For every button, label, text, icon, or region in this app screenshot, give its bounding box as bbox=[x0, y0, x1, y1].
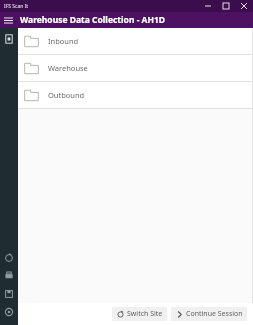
button[interactable]: Warehouse bbox=[18, 55, 253, 81]
staticText: IFS Scan It bbox=[4, 3, 29, 10]
button[interactable]: Refresh bbox=[0, 249, 18, 267]
button[interactable]: Maximize bbox=[217, 0, 235, 12]
button[interactable]: Continue Session bbox=[171, 307, 247, 321]
staticText: Continue Session bbox=[186, 309, 243, 319]
button[interactable]: Inbound bbox=[18, 28, 253, 54]
button[interactable]: Outbound bbox=[18, 82, 253, 108]
button[interactable]: Menu bbox=[0, 12, 16, 28]
button[interactable]: Printer bbox=[0, 267, 18, 285]
button[interactable]: Switch Site bbox=[112, 307, 167, 321]
button[interactable]: Scan bbox=[0, 30, 18, 48]
staticText: Switch Site bbox=[127, 309, 163, 319]
staticText: Inbound bbox=[48, 36, 79, 46]
staticText: Warehouse Data Collection - AH1D bbox=[20, 14, 166, 26]
button[interactable]: Minimize bbox=[199, 0, 217, 12]
button[interactable]: Save bbox=[0, 285, 18, 303]
button[interactable]: Close bbox=[235, 0, 253, 12]
staticText: Warehouse bbox=[48, 63, 88, 73]
button[interactable]: Settings bbox=[0, 303, 18, 321]
staticText: Outbound bbox=[48, 90, 85, 100]
